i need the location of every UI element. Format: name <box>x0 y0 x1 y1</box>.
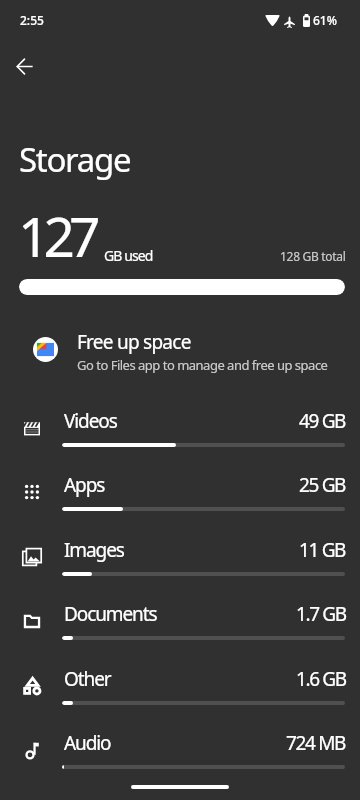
button[interactable]: Documents <box>0 592 360 656</box>
button[interactable]: Apps <box>0 463 360 527</box>
button[interactable]: Videos <box>0 399 360 463</box>
button[interactable]: Images <box>0 528 360 592</box>
button[interactable]: Back <box>8 50 40 82</box>
staticText: 1.6 GB <box>296 666 346 692</box>
staticText: 724 MB <box>286 730 346 756</box>
button[interactable]: Audio <box>0 721 360 785</box>
staticText: Documents <box>64 601 157 627</box>
staticText: Videos <box>64 408 117 434</box>
staticText: 25 GB <box>299 472 346 498</box>
staticText: GB used <box>104 246 153 265</box>
staticText: Images <box>64 537 124 563</box>
staticText: 128 GB total <box>280 248 346 264</box>
staticText: 1.7 GB <box>296 601 346 627</box>
button[interactable]: Other <box>0 657 360 721</box>
staticText: 49 GB <box>299 408 346 434</box>
staticText: Storage <box>19 137 131 182</box>
staticText: Other <box>64 666 111 692</box>
staticText: Audio <box>64 730 111 756</box>
staticText: Go to Files app to manage and free up sp… <box>77 356 328 374</box>
staticText: 61% <box>313 12 337 28</box>
staticText: 127 <box>18 198 95 273</box>
staticText: Apps <box>64 472 105 498</box>
staticText: 2:55 <box>20 12 44 28</box>
staticText: 11 GB <box>299 537 346 563</box>
staticText: Free up space <box>77 329 191 355</box>
button[interactable]: Free up space <box>0 326 360 374</box>
